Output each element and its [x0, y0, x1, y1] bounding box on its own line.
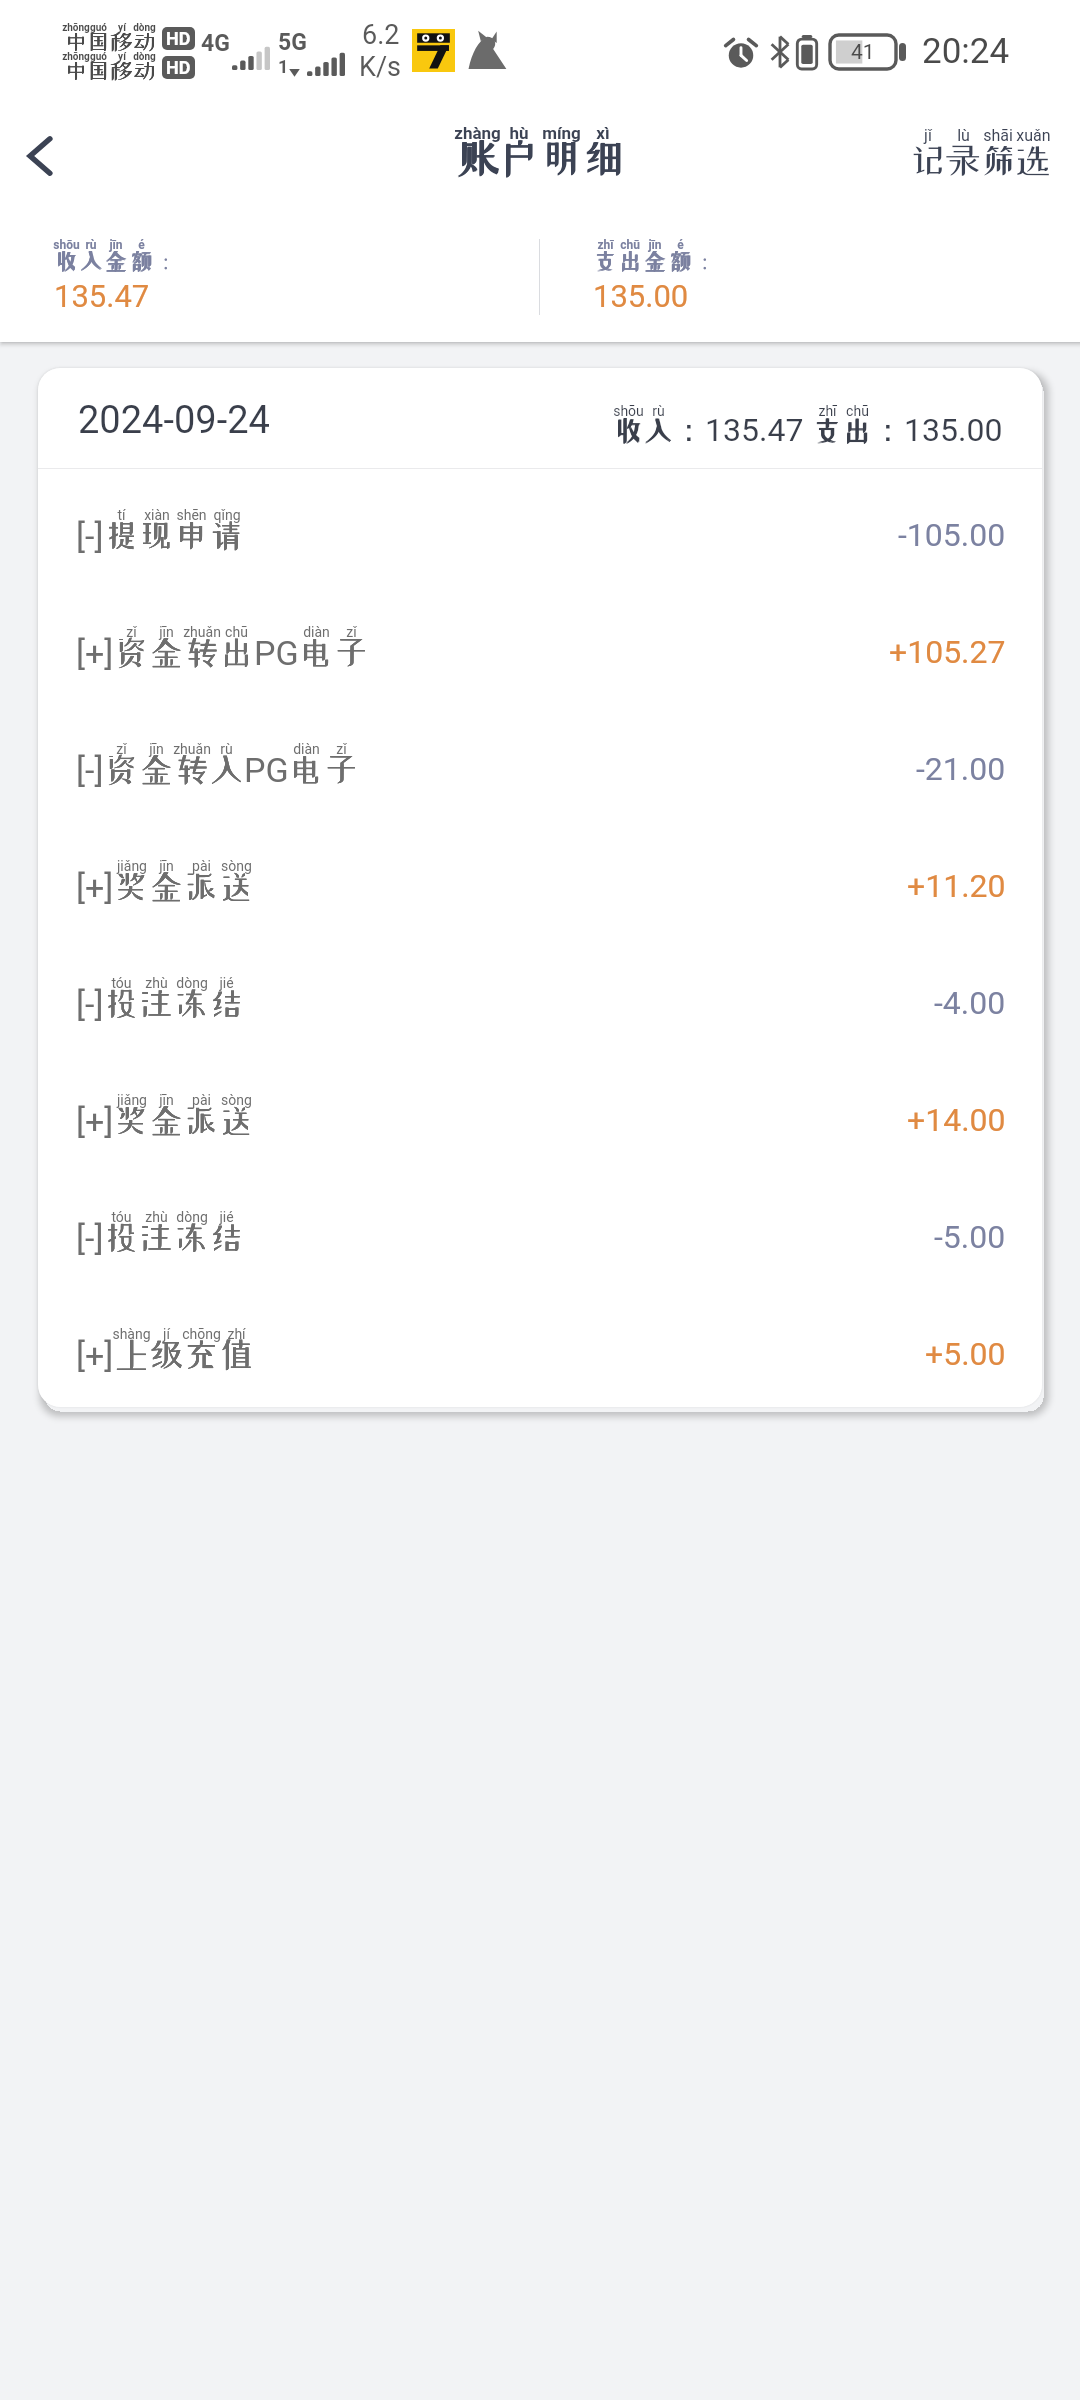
staticText: 电: [289, 752, 324, 786]
staticText: shōu: [613, 403, 644, 419]
staticText: 结: [209, 1220, 244, 1254]
staticText: 级: [149, 1337, 184, 1371]
staticText: zhōng: [62, 51, 90, 63]
staticText: 金: [149, 1103, 184, 1137]
staticText: 冻: [174, 986, 209, 1020]
button[interactable]: [+]: [38, 820, 1042, 937]
staticText: 派: [184, 869, 219, 903]
staticText: 支: [812, 415, 842, 444]
staticText: xiàn: [144, 507, 170, 523]
staticText: 奖: [114, 1103, 149, 1137]
staticText: 收: [55, 249, 79, 272]
staticText: míng: [542, 123, 581, 143]
staticText: 注: [139, 986, 174, 1020]
staticText: 上: [114, 1337, 149, 1371]
staticText: 收: [614, 416, 644, 445]
staticText: xuǎn: [1016, 126, 1051, 145]
staticText: 移: [110, 31, 133, 53]
staticText: 冻: [174, 1220, 209, 1254]
staticText: [+]: [76, 633, 114, 673]
button[interactable]: jǐ: [910, 129, 1050, 175]
staticText: 结: [209, 986, 244, 1020]
staticText: 子: [334, 635, 369, 669]
staticText: zhuǎn: [183, 624, 221, 640]
staticText: 投: [104, 1220, 139, 1254]
staticText: 提: [104, 518, 139, 552]
staticText: zhōng: [62, 22, 90, 34]
staticText: 2024-09-24: [78, 398, 270, 443]
staticText: 动: [133, 60, 156, 82]
staticText: K/s: [359, 51, 402, 83]
staticText: 上: [114, 1337, 149, 1371]
staticText: 支: [593, 250, 617, 273]
staticText: 国: [87, 60, 110, 82]
button[interactable]: [+]: [38, 1054, 1042, 1171]
staticText: 入: [80, 249, 104, 272]
staticText: 奖: [114, 869, 149, 903]
staticText: diàn: [293, 741, 320, 757]
staticText: 金: [139, 752, 174, 786]
staticText: 细: [583, 137, 625, 178]
staticText: ：: [872, 410, 904, 450]
staticText: -5.00: [934, 1218, 1006, 1256]
staticText: pài: [192, 1092, 211, 1108]
staticText: zhù: [145, 1209, 168, 1225]
staticText: 录: [944, 141, 982, 178]
staticText: 出: [842, 415, 872, 444]
staticText: [+]: [76, 867, 114, 907]
staticText: 注: [139, 1220, 174, 1254]
button[interactable]: [+]: [38, 1288, 1042, 1405]
staticText: 金: [149, 869, 184, 903]
staticText: 金: [644, 249, 668, 272]
staticText: 国: [87, 60, 110, 82]
staticText: dòng: [133, 22, 156, 34]
button[interactable]: [-]: [38, 703, 1042, 820]
staticText: zhī: [597, 238, 614, 252]
staticText: 电: [299, 635, 334, 669]
staticText: 现: [139, 518, 174, 552]
staticText: 提: [104, 518, 139, 552]
staticText: chū: [846, 403, 869, 419]
staticText: 记: [909, 141, 947, 178]
staticText: chōng: [182, 1326, 221, 1342]
staticText: yí: [118, 51, 126, 63]
staticText: 值: [219, 1337, 254, 1371]
button[interactable]: [-]: [38, 1171, 1042, 1288]
staticText: 提: [104, 518, 139, 552]
staticText: 入: [644, 415, 674, 444]
staticText: zhuǎn: [173, 741, 211, 757]
staticText: 入: [209, 752, 244, 786]
staticText: 额: [130, 249, 154, 272]
staticText: 动: [133, 60, 156, 82]
staticText: 注: [139, 1220, 174, 1254]
staticText: 中: [65, 60, 88, 82]
staticText: sòng: [221, 858, 252, 874]
staticText: 选: [1014, 141, 1052, 178]
staticText: 支: [594, 249, 618, 272]
staticText: jiǎng: [117, 858, 147, 874]
button[interactable]: [-]: [38, 937, 1042, 1054]
staticText: -21.00: [916, 750, 1006, 788]
staticText: -105.00: [898, 516, 1006, 554]
staticText: 明: [541, 137, 583, 178]
staticText: 收: [55, 250, 79, 273]
staticText: 出: [618, 250, 642, 273]
staticText: 申: [174, 518, 209, 552]
button[interactable]: [-]: [38, 469, 1042, 586]
staticText: 入: [643, 415, 673, 444]
button[interactable]: [+]: [38, 586, 1042, 703]
staticText: [-]: [76, 516, 104, 556]
staticText: 子: [334, 635, 369, 669]
button[interactable]: Back: [4, 120, 76, 192]
staticText: 派: [184, 1103, 219, 1137]
staticText: zhí: [227, 1326, 246, 1342]
staticText: 支: [812, 416, 842, 445]
staticText: 细: [582, 138, 624, 179]
staticText: zǐ: [346, 624, 357, 640]
staticText: 账: [457, 138, 499, 179]
staticText: 金: [104, 249, 128, 272]
staticText: 级: [149, 1337, 184, 1371]
staticText: 收: [614, 415, 644, 444]
staticText: 派: [184, 869, 219, 903]
